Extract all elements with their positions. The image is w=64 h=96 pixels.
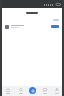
button[interactable]: Filter [53,19,59,21]
button[interactable]: Search [16,86,25,96]
button[interactable]: Add [29,87,36,94]
button[interactable]: Home [3,86,12,96]
button[interactable]: Messages [40,86,49,96]
button[interactable]: Profile [52,86,61,96]
button[interactable]: Action [2,22,62,31]
button[interactable]: Action [51,25,59,28]
